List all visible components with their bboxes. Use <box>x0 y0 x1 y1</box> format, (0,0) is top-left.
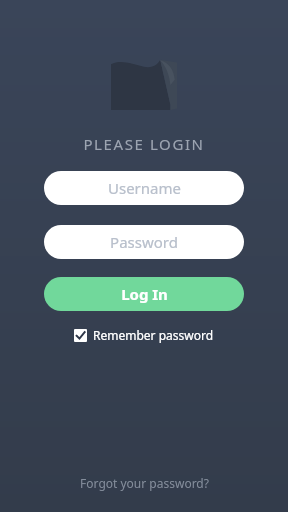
staticText: Forgot your password? <box>80 475 209 491</box>
button[interactable]: Forgot your password? <box>72 469 217 497</box>
other: App logo <box>111 58 177 110</box>
staticText: Password <box>110 232 178 252</box>
staticText: Username <box>108 178 181 198</box>
button[interactable]: Remember password <box>72 324 216 346</box>
staticText: Log In <box>121 284 168 304</box>
staticText: Remember password <box>93 327 214 343</box>
staticText: PLEASE LOGIN <box>83 134 205 154</box>
button[interactable]: Username <box>44 171 244 205</box>
button[interactable]: Password <box>44 225 244 259</box>
button[interactable]: Log In <box>44 277 244 311</box>
